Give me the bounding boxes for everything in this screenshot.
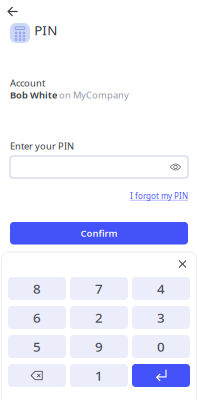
button[interactable]: 4 [132, 277, 190, 300]
staticText: Account [10, 77, 45, 89]
staticText: Enter your PIN [10, 140, 74, 152]
staticText: 3 [157, 309, 165, 326]
button[interactable]: Close keypad [174, 257, 190, 271]
button[interactable]: Enter [132, 364, 190, 387]
button[interactable]: 6 [8, 306, 66, 329]
staticText: 2 [95, 309, 103, 326]
button[interactable]: Back [1, 2, 23, 20]
button[interactable]: 1 [70, 364, 128, 387]
staticText: 7 [95, 280, 103, 297]
staticText: Bob White [10, 89, 57, 101]
staticText: PIN [34, 21, 57, 39]
staticText: MyCompany [73, 89, 129, 101]
staticText: 1 [95, 367, 103, 384]
button[interactable]: Delete [8, 364, 66, 387]
button[interactable]: 5 [8, 335, 66, 358]
staticText: I forgot my PIN [130, 191, 188, 201]
staticText: 5 [33, 338, 41, 355]
staticText: 9 [95, 338, 103, 355]
button[interactable]: Show PIN [170, 163, 188, 171]
staticText: 8 [33, 280, 41, 297]
button[interactable]: 7 [70, 277, 128, 300]
staticText: Confirm [80, 227, 117, 239]
button[interactable]: I forgot my PIN [130, 191, 188, 201]
button[interactable]: 0 [132, 335, 190, 358]
staticText: 0 [157, 338, 165, 355]
button[interactable]: 8 [8, 277, 66, 300]
staticText: 6 [33, 309, 41, 326]
button[interactable]: 9 [70, 335, 128, 358]
button[interactable]: 2 [70, 306, 128, 329]
button[interactable]: 3 [132, 306, 190, 329]
staticText: on [57, 89, 73, 101]
button[interactable]: Confirm [10, 222, 188, 244]
staticText: 4 [157, 280, 165, 297]
